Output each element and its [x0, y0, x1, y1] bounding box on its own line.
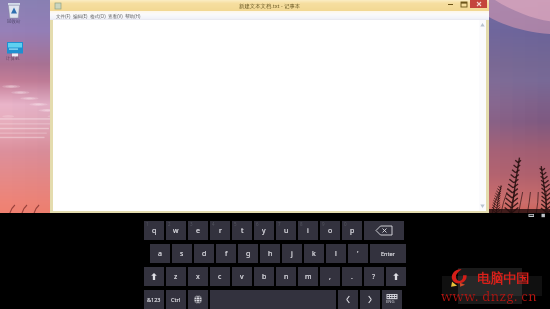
button[interactable]: j — [282, 244, 302, 263]
staticText: 格式(O) — [90, 13, 106, 19]
button[interactable]: d — [194, 244, 214, 263]
staticText: 文件(F) — [56, 13, 71, 19]
button[interactable]: Volume — [541, 213, 547, 218]
staticText: n — [284, 272, 289, 282]
staticText: q — [152, 226, 157, 236]
button[interactable]: a — [150, 244, 170, 263]
button[interactable]: Shift — [386, 267, 406, 286]
staticText: Ctrl — [171, 296, 181, 303]
staticText: 6 — [256, 221, 259, 227]
button[interactable]: 帮助(H) — [125, 13, 141, 19]
button[interactable]: e — [188, 221, 208, 240]
button[interactable]: r — [210, 221, 230, 240]
staticText: . — [351, 272, 353, 282]
staticText: 8 — [300, 221, 303, 227]
button[interactable]: Change keyboard — [382, 290, 402, 309]
button[interactable]: Network — [528, 213, 536, 218]
staticText: o — [328, 226, 333, 236]
button[interactable]: q — [144, 221, 164, 240]
staticText: i — [307, 226, 309, 236]
staticText: r — [219, 226, 222, 236]
staticText: z — [174, 272, 178, 282]
staticText: c — [218, 272, 222, 282]
button[interactable]: l — [326, 244, 346, 263]
staticText: t — [241, 226, 244, 236]
button[interactable]: h — [260, 244, 280, 263]
button[interactable]: Scroll — [479, 20, 486, 211]
staticText: 5 — [234, 221, 237, 227]
button[interactable]: , — [320, 267, 340, 286]
button[interactable]: f — [216, 244, 236, 263]
staticText: 新建文本文档.txt - 记事本 — [239, 2, 301, 9]
staticText: &123 — [147, 296, 161, 303]
button[interactable]: Ctrl — [166, 290, 186, 309]
staticText: 查看(V) — [108, 13, 123, 19]
button[interactable]: p — [342, 221, 362, 240]
button[interactable]: Enter — [370, 244, 406, 263]
button[interactable]: Computer — [5, 40, 33, 65]
button[interactable]: t — [232, 221, 252, 240]
button[interactable]: Close — [470, 0, 487, 8]
staticText: m — [305, 272, 312, 282]
staticText: ' — [357, 249, 359, 259]
button[interactable]: 格式(O) — [90, 13, 106, 19]
staticText: 2 — [168, 221, 171, 227]
staticText: 计算机 — [6, 56, 20, 62]
button[interactable]: ? — [364, 267, 384, 286]
staticText: www. dnzg. cn — [441, 287, 537, 305]
button[interactable]: 文件(F) — [56, 13, 71, 19]
button[interactable]: Left — [338, 290, 358, 309]
staticText: 帮助(H) — [125, 13, 141, 19]
button[interactable]: &123 — [144, 290, 164, 309]
button[interactable]: x — [188, 267, 208, 286]
button[interactable]: Minimize — [444, 0, 457, 8]
button[interactable]: c — [210, 267, 230, 286]
staticText: 3 — [190, 221, 193, 227]
staticText: 编辑(E) — [73, 13, 88, 19]
staticText: x — [196, 272, 200, 282]
button[interactable]: u — [276, 221, 296, 240]
staticText: , — [329, 272, 331, 282]
button[interactable]: n — [276, 267, 296, 286]
staticText: g — [246, 249, 251, 259]
button[interactable]: g — [238, 244, 258, 263]
staticText: 0 — [344, 221, 347, 227]
staticText: 9 — [322, 221, 325, 227]
button[interactable]: i — [298, 221, 318, 240]
button[interactable]: Shift — [144, 267, 164, 286]
staticText: 回收站 — [7, 19, 21, 25]
staticText: ENG — [386, 299, 395, 305]
button[interactable]: Maximize — [457, 0, 470, 8]
button[interactable]: k — [304, 244, 324, 263]
button[interactable]: Input language — [188, 290, 208, 309]
staticText: 1 — [146, 221, 149, 227]
staticText: ? — [372, 272, 376, 282]
staticText: a — [158, 249, 162, 259]
button[interactable]: Right — [360, 290, 380, 309]
staticText: f — [225, 249, 228, 259]
button[interactable]: 编辑(E) — [73, 13, 88, 19]
button[interactable]: z — [166, 267, 186, 286]
staticText: d — [202, 249, 207, 259]
button[interactable]: Recycle Bin — [7, 2, 33, 27]
button[interactable]: b — [254, 267, 274, 286]
staticText: y — [262, 226, 266, 236]
button[interactable]: m — [298, 267, 318, 286]
staticText: 电脑中国 — [477, 270, 529, 286]
button[interactable]: 查看(V) — [108, 13, 123, 19]
button[interactable]: y — [254, 221, 274, 240]
button[interactable]: Backspace — [364, 221, 404, 240]
staticText: Enter — [381, 250, 395, 257]
button[interactable]: s — [172, 244, 192, 263]
button[interactable]: . — [342, 267, 362, 286]
button[interactable]: o — [320, 221, 340, 240]
staticText: 4 — [212, 221, 215, 227]
button[interactable]: ' — [348, 244, 368, 263]
staticText: l — [335, 249, 337, 259]
button[interactable]: v — [232, 267, 252, 286]
staticText: b — [262, 272, 267, 282]
staticText: u — [284, 226, 289, 236]
staticText: h — [268, 249, 273, 259]
button[interactable]: w — [166, 221, 186, 240]
